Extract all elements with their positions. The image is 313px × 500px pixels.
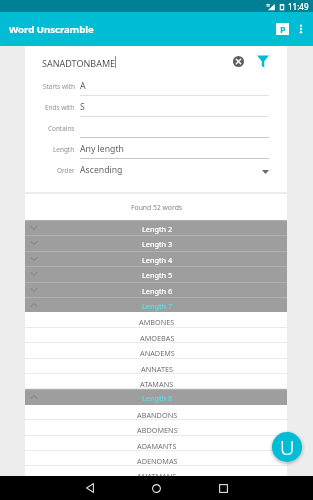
staticText: Order bbox=[57, 166, 75, 175]
staticText: 11:49 bbox=[288, 1, 309, 12]
button[interactable]: ANNATES bbox=[25, 359, 287, 374]
button[interactable]: ANADEMS bbox=[25, 343, 287, 359]
staticText: P bbox=[280, 23, 286, 35]
button[interactable]: Length 3 bbox=[25, 235, 287, 251]
staticText: ATAMANS bbox=[140, 379, 174, 389]
staticText: ADAMANTS bbox=[137, 441, 177, 451]
staticText: Length 2 bbox=[142, 224, 173, 234]
staticText: Length 3 bbox=[142, 239, 173, 249]
button[interactable]: AMBONES bbox=[25, 312, 287, 328]
button[interactable]: Order bbox=[25, 160, 287, 180]
staticText: S bbox=[80, 101, 85, 113]
button[interactable]: Length 7 bbox=[25, 297, 287, 312]
staticText: ANNATES bbox=[141, 364, 174, 374]
button[interactable]: Contains bbox=[25, 118, 287, 138]
button[interactable]: Length 5 bbox=[25, 266, 287, 282]
staticText: Starts with bbox=[43, 82, 75, 91]
staticText: Length 5 bbox=[142, 270, 173, 280]
staticText: Length 7 bbox=[142, 301, 173, 311]
button[interactable]: Length 2 bbox=[25, 220, 287, 235]
staticText: Ascending bbox=[80, 164, 123, 176]
staticText: Word Unscramble bbox=[9, 23, 94, 36]
button[interactable]: ADENOMAS bbox=[25, 451, 287, 466]
button[interactable]: Length 4 bbox=[25, 251, 287, 266]
button[interactable]: ABANDONS bbox=[25, 405, 287, 420]
button[interactable]: ABDOMENS bbox=[25, 420, 287, 436]
staticText: AMBONES bbox=[139, 317, 175, 327]
button[interactable]: Filter bbox=[252, 50, 274, 72]
button[interactable]: Home bbox=[144, 476, 168, 500]
button[interactable]: Length bbox=[25, 139, 287, 159]
button[interactable]: ANATMANS bbox=[25, 466, 287, 482]
staticText: Contains bbox=[48, 124, 75, 133]
staticText: ANATMANS bbox=[137, 471, 177, 481]
button[interactable]: Back bbox=[78, 476, 102, 500]
button[interactable]: Ends with bbox=[25, 97, 287, 117]
button[interactable]: Starts with bbox=[25, 76, 287, 96]
staticText: Length 4 bbox=[142, 255, 173, 265]
staticText: U bbox=[280, 434, 295, 461]
button[interactable]: Length 8 bbox=[25, 389, 287, 405]
staticText: ABDOMENS bbox=[137, 425, 178, 435]
button[interactable]: Unscramble bbox=[272, 432, 302, 462]
staticText: A bbox=[80, 80, 86, 92]
staticText: Length 6 bbox=[142, 286, 173, 296]
staticText: ANADEMS bbox=[140, 348, 175, 358]
button[interactable]: AMOEBAS bbox=[25, 328, 287, 343]
button[interactable]: More options bbox=[290, 18, 312, 40]
staticText: Any length bbox=[80, 143, 124, 155]
button[interactable]: Recents bbox=[211, 476, 235, 500]
button[interactable]: ADAMANTS bbox=[25, 436, 287, 451]
staticText: Length 8 bbox=[142, 393, 173, 403]
staticText: Length bbox=[53, 145, 75, 154]
staticText: ABANDONS bbox=[137, 410, 178, 420]
button[interactable]: ATAMANS bbox=[25, 374, 287, 389]
button[interactable]: Dictionary bbox=[271, 18, 293, 40]
button[interactable]: Length 6 bbox=[25, 282, 287, 297]
staticText: Found 52 words bbox=[131, 203, 183, 212]
staticText: AMOEBAS bbox=[140, 333, 175, 343]
staticText: SANADTONBAME bbox=[42, 57, 116, 69]
button[interactable]: Clear text bbox=[227, 50, 249, 72]
staticText: ADENOMAS bbox=[137, 456, 178, 466]
staticText: Ends with bbox=[45, 103, 75, 112]
